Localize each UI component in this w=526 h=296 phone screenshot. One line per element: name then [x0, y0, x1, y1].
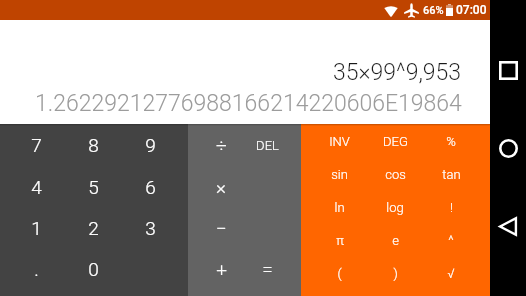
- staticText: √: [447, 266, 455, 281]
- staticText: ln: [334, 200, 345, 215]
- button[interactable]: 6: [122, 166, 179, 207]
- button[interactable]: 8: [65, 124, 122, 166]
- button[interactable]: cos: [367, 158, 423, 191]
- button[interactable]: ×: [198, 166, 244, 207]
- staticText: tan: [442, 167, 461, 182]
- staticText: π: [336, 233, 344, 248]
- button[interactable]: 3: [122, 207, 179, 248]
- button[interactable]: −: [198, 207, 244, 248]
- button[interactable]: 7: [8, 124, 65, 166]
- staticText: 8: [88, 134, 99, 156]
- button[interactable]: ÷: [198, 124, 244, 166]
- staticText: 35×99^9,953: [333, 59, 462, 86]
- staticText: 4: [31, 176, 42, 198]
- button[interactable]: 1: [8, 207, 65, 248]
- staticText: =: [262, 258, 273, 280]
- button[interactable]: √: [423, 257, 479, 290]
- button[interactable]: DEL: [244, 124, 291, 166]
- button[interactable]: 5: [65, 166, 122, 207]
- staticText: ): [393, 266, 398, 281]
- button[interactable]: π: [312, 224, 367, 257]
- button[interactable]: .: [8, 248, 65, 289]
- button[interactable]: ^: [423, 224, 479, 257]
- button[interactable]: (: [312, 257, 367, 290]
- staticText: 5: [88, 176, 99, 198]
- staticText: (: [337, 266, 342, 281]
- staticText: log: [386, 200, 404, 215]
- staticText: .: [34, 258, 39, 280]
- button[interactable]: =: [244, 248, 291, 289]
- button[interactable]: e: [367, 224, 423, 257]
- staticText: cos: [385, 167, 406, 182]
- staticText: e: [392, 233, 399, 248]
- button[interactable]: Home: [490, 130, 526, 166]
- staticText: 7: [31, 134, 42, 156]
- button[interactable]: %: [423, 124, 479, 158]
- button[interactable]: !: [423, 191, 479, 224]
- staticText: 66%: [423, 4, 444, 17]
- staticText: 3: [145, 217, 156, 239]
- staticText: ^: [448, 233, 454, 248]
- button[interactable]: tan: [423, 158, 479, 191]
- staticText: !: [450, 200, 453, 215]
- staticText: %: [446, 134, 456, 149]
- staticText: DEG: [383, 134, 408, 149]
- staticText: INV: [329, 134, 350, 149]
- button[interactable]: sin: [312, 158, 367, 191]
- staticText: 1.26229212776988166214220606E19864: [35, 90, 462, 117]
- staticText: 1: [31, 217, 42, 239]
- button[interactable]: ln: [312, 191, 367, 224]
- button[interactable]: 4: [8, 166, 65, 207]
- staticText: DEL: [256, 138, 279, 153]
- staticText: +: [216, 258, 227, 280]
- staticText: 07:00: [456, 3, 487, 17]
- staticText: 0: [88, 258, 99, 280]
- button[interactable]: ): [367, 257, 423, 290]
- staticText: 9: [145, 134, 156, 156]
- staticText: ÷: [216, 134, 227, 156]
- staticText: ×: [216, 176, 226, 198]
- staticText: 2: [88, 217, 99, 239]
- button[interactable]: INV: [312, 124, 367, 158]
- staticText: −: [216, 217, 227, 239]
- staticText: sin: [331, 167, 348, 182]
- button[interactable]: 2: [65, 207, 122, 248]
- staticText: 6: [145, 176, 156, 198]
- button[interactable]: Back: [490, 208, 526, 244]
- button[interactable]: 0: [65, 248, 122, 289]
- button[interactable]: log: [367, 191, 423, 224]
- button[interactable]: Recent apps: [490, 52, 526, 88]
- button[interactable]: DEG: [367, 124, 423, 158]
- button[interactable]: +: [198, 248, 244, 289]
- button[interactable]: 9: [122, 124, 179, 166]
